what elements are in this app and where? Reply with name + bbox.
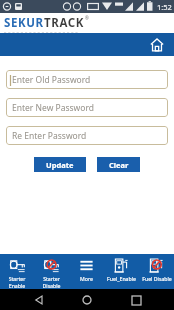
button[interactable]: Fuel_Enable [104,254,139,289]
staticText: Enter Old Password [12,74,91,86]
button[interactable]: Recent apps [126,290,146,310]
staticText: Fuel Disable [142,275,172,282]
staticText: SEKUR [4,15,44,31]
staticText: Starter Enable [0,275,34,289]
button[interactable]: Home [148,36,166,54]
button[interactable]: Home [77,290,97,310]
staticText: Fuel_Enable [107,275,136,282]
button[interactable]: Update [34,157,86,172]
staticText: Re Enter Password [12,130,87,142]
button[interactable]: Clear [97,157,140,172]
button[interactable]: Enter Old Password [6,70,168,89]
staticText: ® [85,15,89,21]
staticText: TRACK [44,15,84,31]
button[interactable]: Starter Enable [0,254,34,289]
button[interactable]: Fuel Disable [139,254,174,289]
staticText: 1:52 [157,2,172,12]
button[interactable]: Back [29,290,49,310]
button[interactable]: More [69,254,104,289]
button[interactable]: Starter Disable [34,254,69,289]
button[interactable]: Re Enter Password [6,126,168,145]
staticText: Starter Disable [34,275,69,289]
staticText: Clear [109,160,129,170]
staticText: Enter New Password [12,102,94,114]
staticText: More [80,275,93,282]
staticText: Update [46,160,74,170]
button[interactable]: Enter New Password [6,98,168,117]
